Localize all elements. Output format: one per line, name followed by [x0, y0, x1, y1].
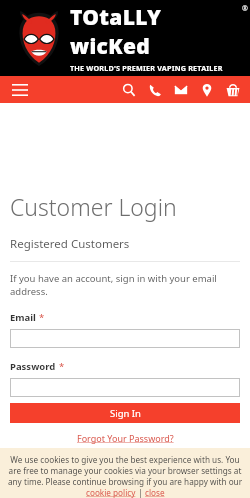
- button[interactable]: Menu: [8, 78, 32, 102]
- button[interactable]: [10, 329, 240, 348]
- staticText: Customer Login: [10, 191, 177, 222]
- staticText: Sign In: [110, 407, 141, 420]
- button[interactable]: Shopping basket: [223, 80, 243, 100]
- button[interactable]: cookie policy: [86, 487, 136, 498]
- button[interactable]: Sign In: [10, 403, 240, 423]
- staticText: Registered Customers: [10, 236, 130, 252]
- staticText: Email: [10, 311, 36, 324]
- button[interactable]: [10, 378, 240, 397]
- button[interactable]: Call us: [145, 80, 165, 100]
- staticText: TOtaLLY wicKed: [70, 3, 242, 61]
- staticText: *: [59, 360, 65, 373]
- staticText: If you have an account, sign in with you…: [10, 272, 217, 298]
- staticText: We use cookies to give you the best expe…: [6, 454, 244, 487]
- staticText: Password: [10, 360, 56, 373]
- button[interactable]: Forgot Your Password?: [75, 430, 176, 446]
- button[interactable]: Store locator: [197, 80, 217, 100]
- staticText: THE WORLD'S PREMIER VAPING RETAILER: [70, 63, 223, 73]
- button[interactable]: Search: [119, 80, 139, 100]
- staticText: Forgot Your Password?: [77, 432, 174, 444]
- staticText: *: [39, 311, 45, 324]
- button[interactable]: close: [145, 487, 165, 498]
- button[interactable]: Email us: [171, 80, 191, 100]
- staticText: cookie policy: [86, 487, 136, 498]
- staticText: |: [136, 487, 145, 498]
- staticText: close: [145, 487, 165, 498]
